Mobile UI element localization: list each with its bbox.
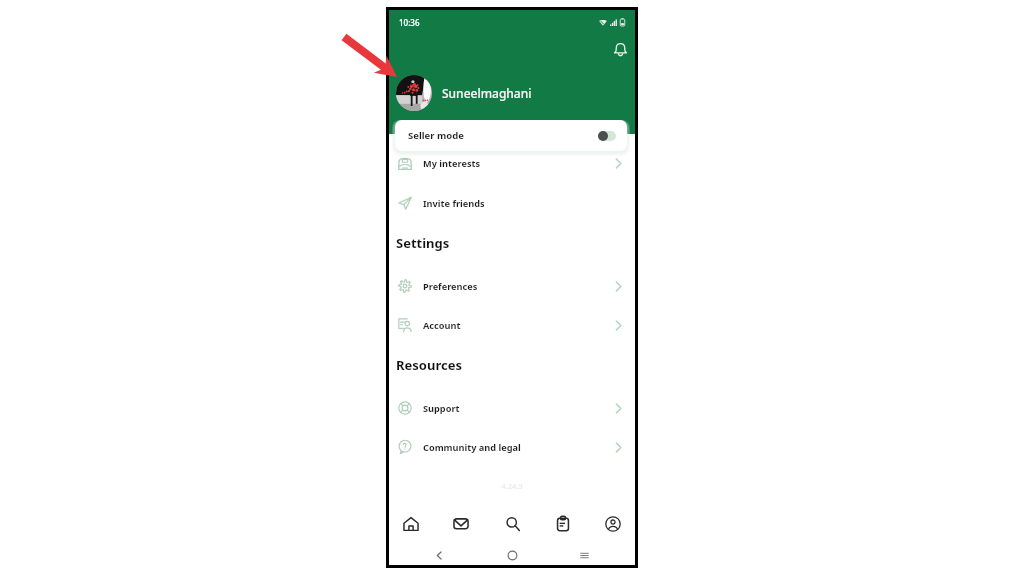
staticText: Resources [396,356,462,374]
button[interactable]: Home [501,546,523,564]
staticText: Invite friends [423,197,485,210]
staticText: Community and legal [423,441,521,454]
button[interactable]: Preferences [389,266,635,306]
staticText: 4.24.3 [389,481,635,491]
staticText: My interests [423,157,481,170]
staticText: Suneelmaghani [442,85,532,101]
button[interactable]: Inbox [443,510,479,538]
button[interactable]: Search [495,510,531,538]
button[interactable]: Notifications [609,38,631,60]
button[interactable]: Sell [545,510,581,538]
button[interactable]: My interests [389,143,635,183]
button[interactable]: Community and legal [389,427,635,467]
button[interactable]: Back [428,546,450,564]
staticText: Preferences [423,280,478,293]
button[interactable]: Profile [595,510,631,538]
staticText: 10:36 [399,17,420,28]
staticText: Settings [396,234,450,252]
staticText: Seller mode [408,129,464,142]
button[interactable]: Profile photo [396,75,432,111]
button[interactable]: Support [389,388,635,428]
button[interactable]: Recents [573,546,595,564]
button[interactable]: Seller mode [395,120,627,151]
button[interactable]: Account [389,305,635,345]
staticText: Support [423,402,460,415]
button[interactable]: Home [393,510,429,538]
staticText: Account [423,319,461,332]
button[interactable]: Invite friends [389,183,635,223]
